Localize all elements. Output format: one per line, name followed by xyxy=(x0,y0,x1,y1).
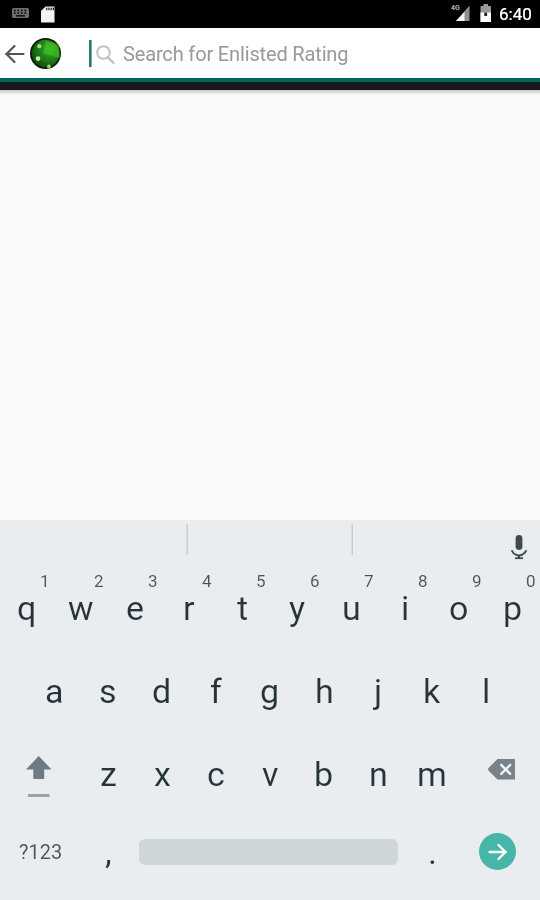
staticText: e xyxy=(126,588,145,628)
button[interactable]: l xyxy=(459,649,513,732)
staticText: . xyxy=(428,832,437,872)
button[interactable] xyxy=(30,38,61,69)
staticText: s xyxy=(99,671,117,711)
button[interactable]: p xyxy=(486,566,540,649)
staticText: g xyxy=(260,671,280,711)
button[interactable]: e xyxy=(108,566,162,649)
staticText: n xyxy=(369,754,388,794)
button[interactable]: u xyxy=(324,566,378,649)
button[interactable]: f xyxy=(189,649,243,732)
button[interactable]: w xyxy=(54,566,108,649)
button[interactable]: , xyxy=(81,815,135,888)
staticText: h xyxy=(315,671,334,711)
staticText: 9 xyxy=(472,571,482,591)
staticText: 0 xyxy=(526,571,536,591)
button[interactable]: s xyxy=(81,649,135,732)
button[interactable] xyxy=(459,815,540,888)
staticText: i xyxy=(401,588,410,628)
button[interactable]: v xyxy=(243,732,297,815)
staticText: a xyxy=(45,671,64,711)
button[interactable]: j xyxy=(351,649,405,732)
staticText: 6:40 xyxy=(499,4,532,24)
button[interactable]: c xyxy=(189,732,243,815)
button[interactable]: q xyxy=(0,566,54,649)
staticText: 3 xyxy=(148,571,158,591)
button[interactable]: Search for Enlisted Rating xyxy=(80,28,540,78)
staticText: v xyxy=(262,754,279,794)
staticText: 4 xyxy=(202,571,212,591)
button[interactable]: n xyxy=(351,732,405,815)
staticText: z xyxy=(100,754,117,794)
staticText: Search for Enlisted Rating xyxy=(123,42,349,65)
button[interactable]: i xyxy=(378,566,432,649)
staticText: l xyxy=(482,671,491,711)
staticText: , xyxy=(105,832,112,872)
staticText: p xyxy=(503,588,523,628)
button[interactable]: a xyxy=(27,649,81,732)
button[interactable]: z xyxy=(81,732,135,815)
staticText: r xyxy=(183,588,195,628)
button[interactable]: t xyxy=(216,566,270,649)
button[interactable]: b xyxy=(297,732,351,815)
staticText: 8 xyxy=(418,571,428,591)
button[interactable]: . xyxy=(405,815,459,888)
button[interactable]: o xyxy=(432,566,486,649)
button[interactable] xyxy=(0,732,81,815)
button[interactable]: m xyxy=(405,732,459,815)
staticText: k xyxy=(423,671,441,711)
staticText: o xyxy=(449,588,469,628)
staticText: w xyxy=(68,588,94,628)
button[interactable]: h xyxy=(297,649,351,732)
staticText: 5 xyxy=(256,571,266,591)
staticText: t xyxy=(237,588,249,628)
button[interactable]: y xyxy=(270,566,324,649)
staticText: u xyxy=(342,588,361,628)
staticText: x xyxy=(154,754,171,794)
button[interactable]: k xyxy=(405,649,459,732)
staticText: 4G xyxy=(451,4,460,12)
button[interactable] xyxy=(459,732,540,815)
staticText: ?123 xyxy=(19,840,63,863)
staticText: f xyxy=(210,671,222,711)
button[interactable]: ?123 xyxy=(0,815,81,888)
button[interactable]: d xyxy=(135,649,189,732)
button[interactable]: g xyxy=(243,649,297,732)
staticText: b xyxy=(314,754,334,794)
staticText: y xyxy=(289,588,306,628)
staticText: q xyxy=(17,588,37,628)
button[interactable]: x xyxy=(135,732,189,815)
button[interactable]: r xyxy=(162,566,216,649)
staticText: j xyxy=(374,671,383,711)
staticText: 1 xyxy=(40,571,50,591)
staticText: 7 xyxy=(364,571,374,591)
staticText: d xyxy=(152,671,172,711)
staticText: 2 xyxy=(94,571,104,591)
button[interactable] xyxy=(0,33,40,73)
button[interactable] xyxy=(135,815,405,888)
button[interactable] xyxy=(498,522,540,564)
staticText: 6 xyxy=(310,571,320,591)
staticText: m xyxy=(417,754,447,794)
staticText: c xyxy=(207,754,225,794)
